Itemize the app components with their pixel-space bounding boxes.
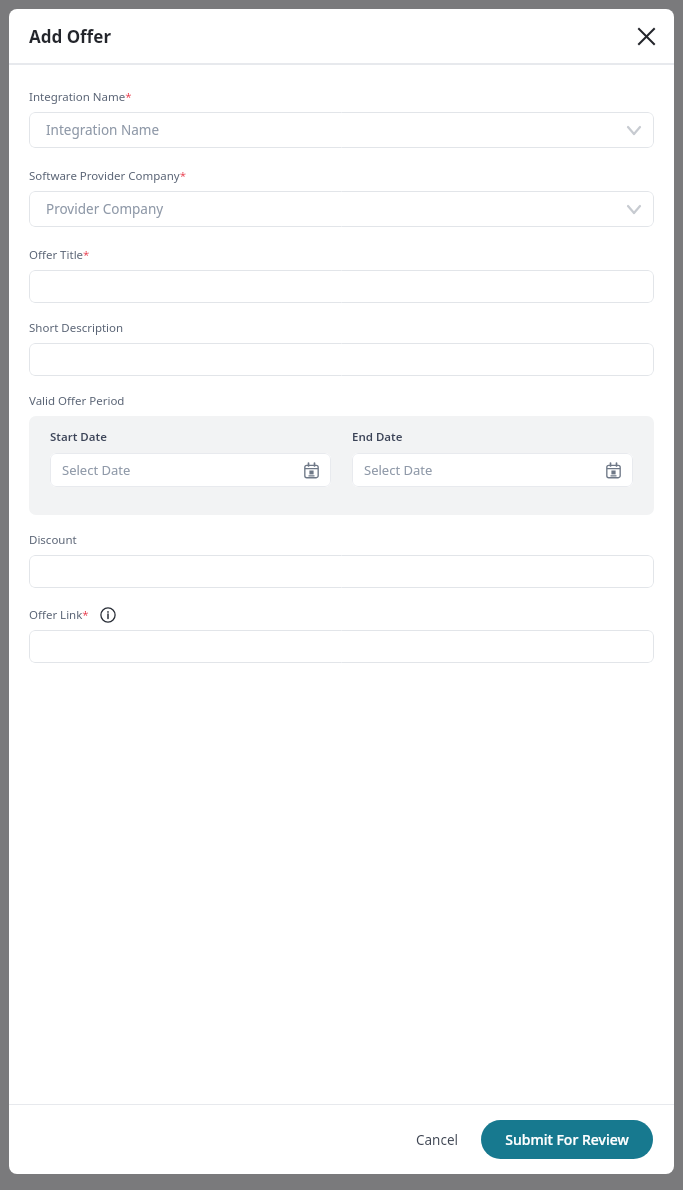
button[interactable]: Provider Company [29,191,654,227]
button[interactable]: Cancel [404,1122,471,1158]
staticText: Short Description [29,320,124,336]
button[interactable] [29,630,654,663]
staticText: Cancel [416,1131,459,1149]
button[interactable] [29,555,654,588]
button[interactable] [29,343,654,376]
button[interactable]: Close [629,19,663,53]
button[interactable]: Submit For Review [481,1120,653,1159]
staticText: Integration Name* [29,89,132,105]
button[interactable] [29,270,654,303]
staticText: Add Offer [29,25,111,48]
staticText: Select Date [364,461,433,479]
staticText: Start Date [50,429,107,445]
staticText: Submit For Review [505,1130,629,1149]
staticText: Software Provider Company* [29,168,186,184]
button[interactable]: Offer link information [98,605,118,625]
staticText: Provider Company [46,200,164,218]
staticText: Valid Offer Period [29,393,125,409]
staticText: Discount [29,532,77,548]
staticText: Integration Name [46,121,160,139]
button[interactable]: Integration Name [29,112,654,148]
staticText: Offer Title* [29,247,90,263]
button[interactable]: End Date [352,453,633,487]
button[interactable]: Start Date [50,453,331,487]
staticText: Select Date [62,461,131,479]
staticText: Offer Link* [29,607,89,623]
staticText: End Date [352,429,403,445]
